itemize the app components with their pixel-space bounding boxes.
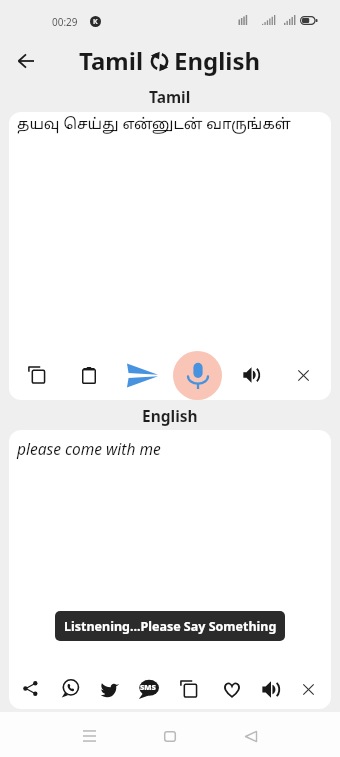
staticText: K	[93, 17, 98, 27]
staticText: தயவு செய்து என்னுடன் வாருங்கள்	[17, 116, 291, 135]
staticText: Listnening...Please Say Something	[64, 618, 277, 635]
button[interactable]: Speak	[254, 672, 288, 706]
button[interactable]: Clear	[286, 358, 320, 392]
button[interactable]: Recent apps	[72, 719, 106, 753]
button[interactable]: Copy	[172, 672, 206, 706]
button[interactable]: Speak	[234, 358, 268, 392]
staticText: English	[142, 405, 198, 426]
button[interactable]: Home	[153, 719, 187, 753]
button[interactable]: Twitter	[92, 672, 126, 706]
button[interactable]: Send	[125, 358, 159, 392]
button[interactable]: Swap languages	[148, 48, 170, 74]
button[interactable]: SMS	[131, 672, 165, 706]
staticText: Tamil	[79, 44, 144, 77]
button[interactable]: Back	[8, 43, 44, 79]
button[interactable]: Clear	[291, 672, 325, 706]
button[interactable]: Paste	[72, 358, 106, 392]
staticText: 00:29	[52, 15, 78, 29]
button[interactable]: WhatsApp	[53, 672, 87, 706]
button[interactable]: Microphone	[173, 351, 222, 400]
staticText: please come with me	[17, 438, 161, 459]
button[interactable]: Back	[234, 719, 268, 753]
staticText: English	[174, 44, 261, 77]
button[interactable]: Share	[13, 672, 47, 706]
staticText: SMS	[140, 682, 156, 692]
button[interactable]: Copy	[20, 358, 54, 392]
staticText: Tamil	[149, 86, 191, 107]
button[interactable]: Favourite	[215, 672, 249, 706]
